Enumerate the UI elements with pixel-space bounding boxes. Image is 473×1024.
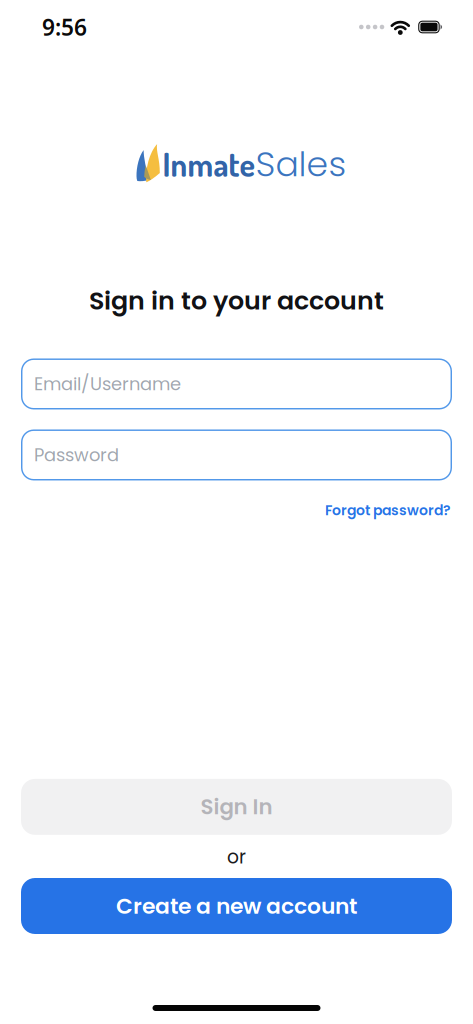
staticText: or [227,844,246,870]
staticText: Sign In [200,792,272,822]
staticText: Sales [255,140,346,188]
staticText: Create a new account [116,891,357,921]
staticText: Password [34,442,119,467]
staticText: Email/Username [34,371,181,396]
staticText: Forgot password? [325,500,451,520]
staticText: Inmate [162,144,255,184]
button[interactable]: Sign In [21,779,452,835]
staticText: 9:56 [42,12,87,42]
button[interactable]: Forgot password? [325,500,451,520]
button[interactable]: Create a new account [21,878,452,934]
staticText: Sign in to your account [89,283,384,318]
